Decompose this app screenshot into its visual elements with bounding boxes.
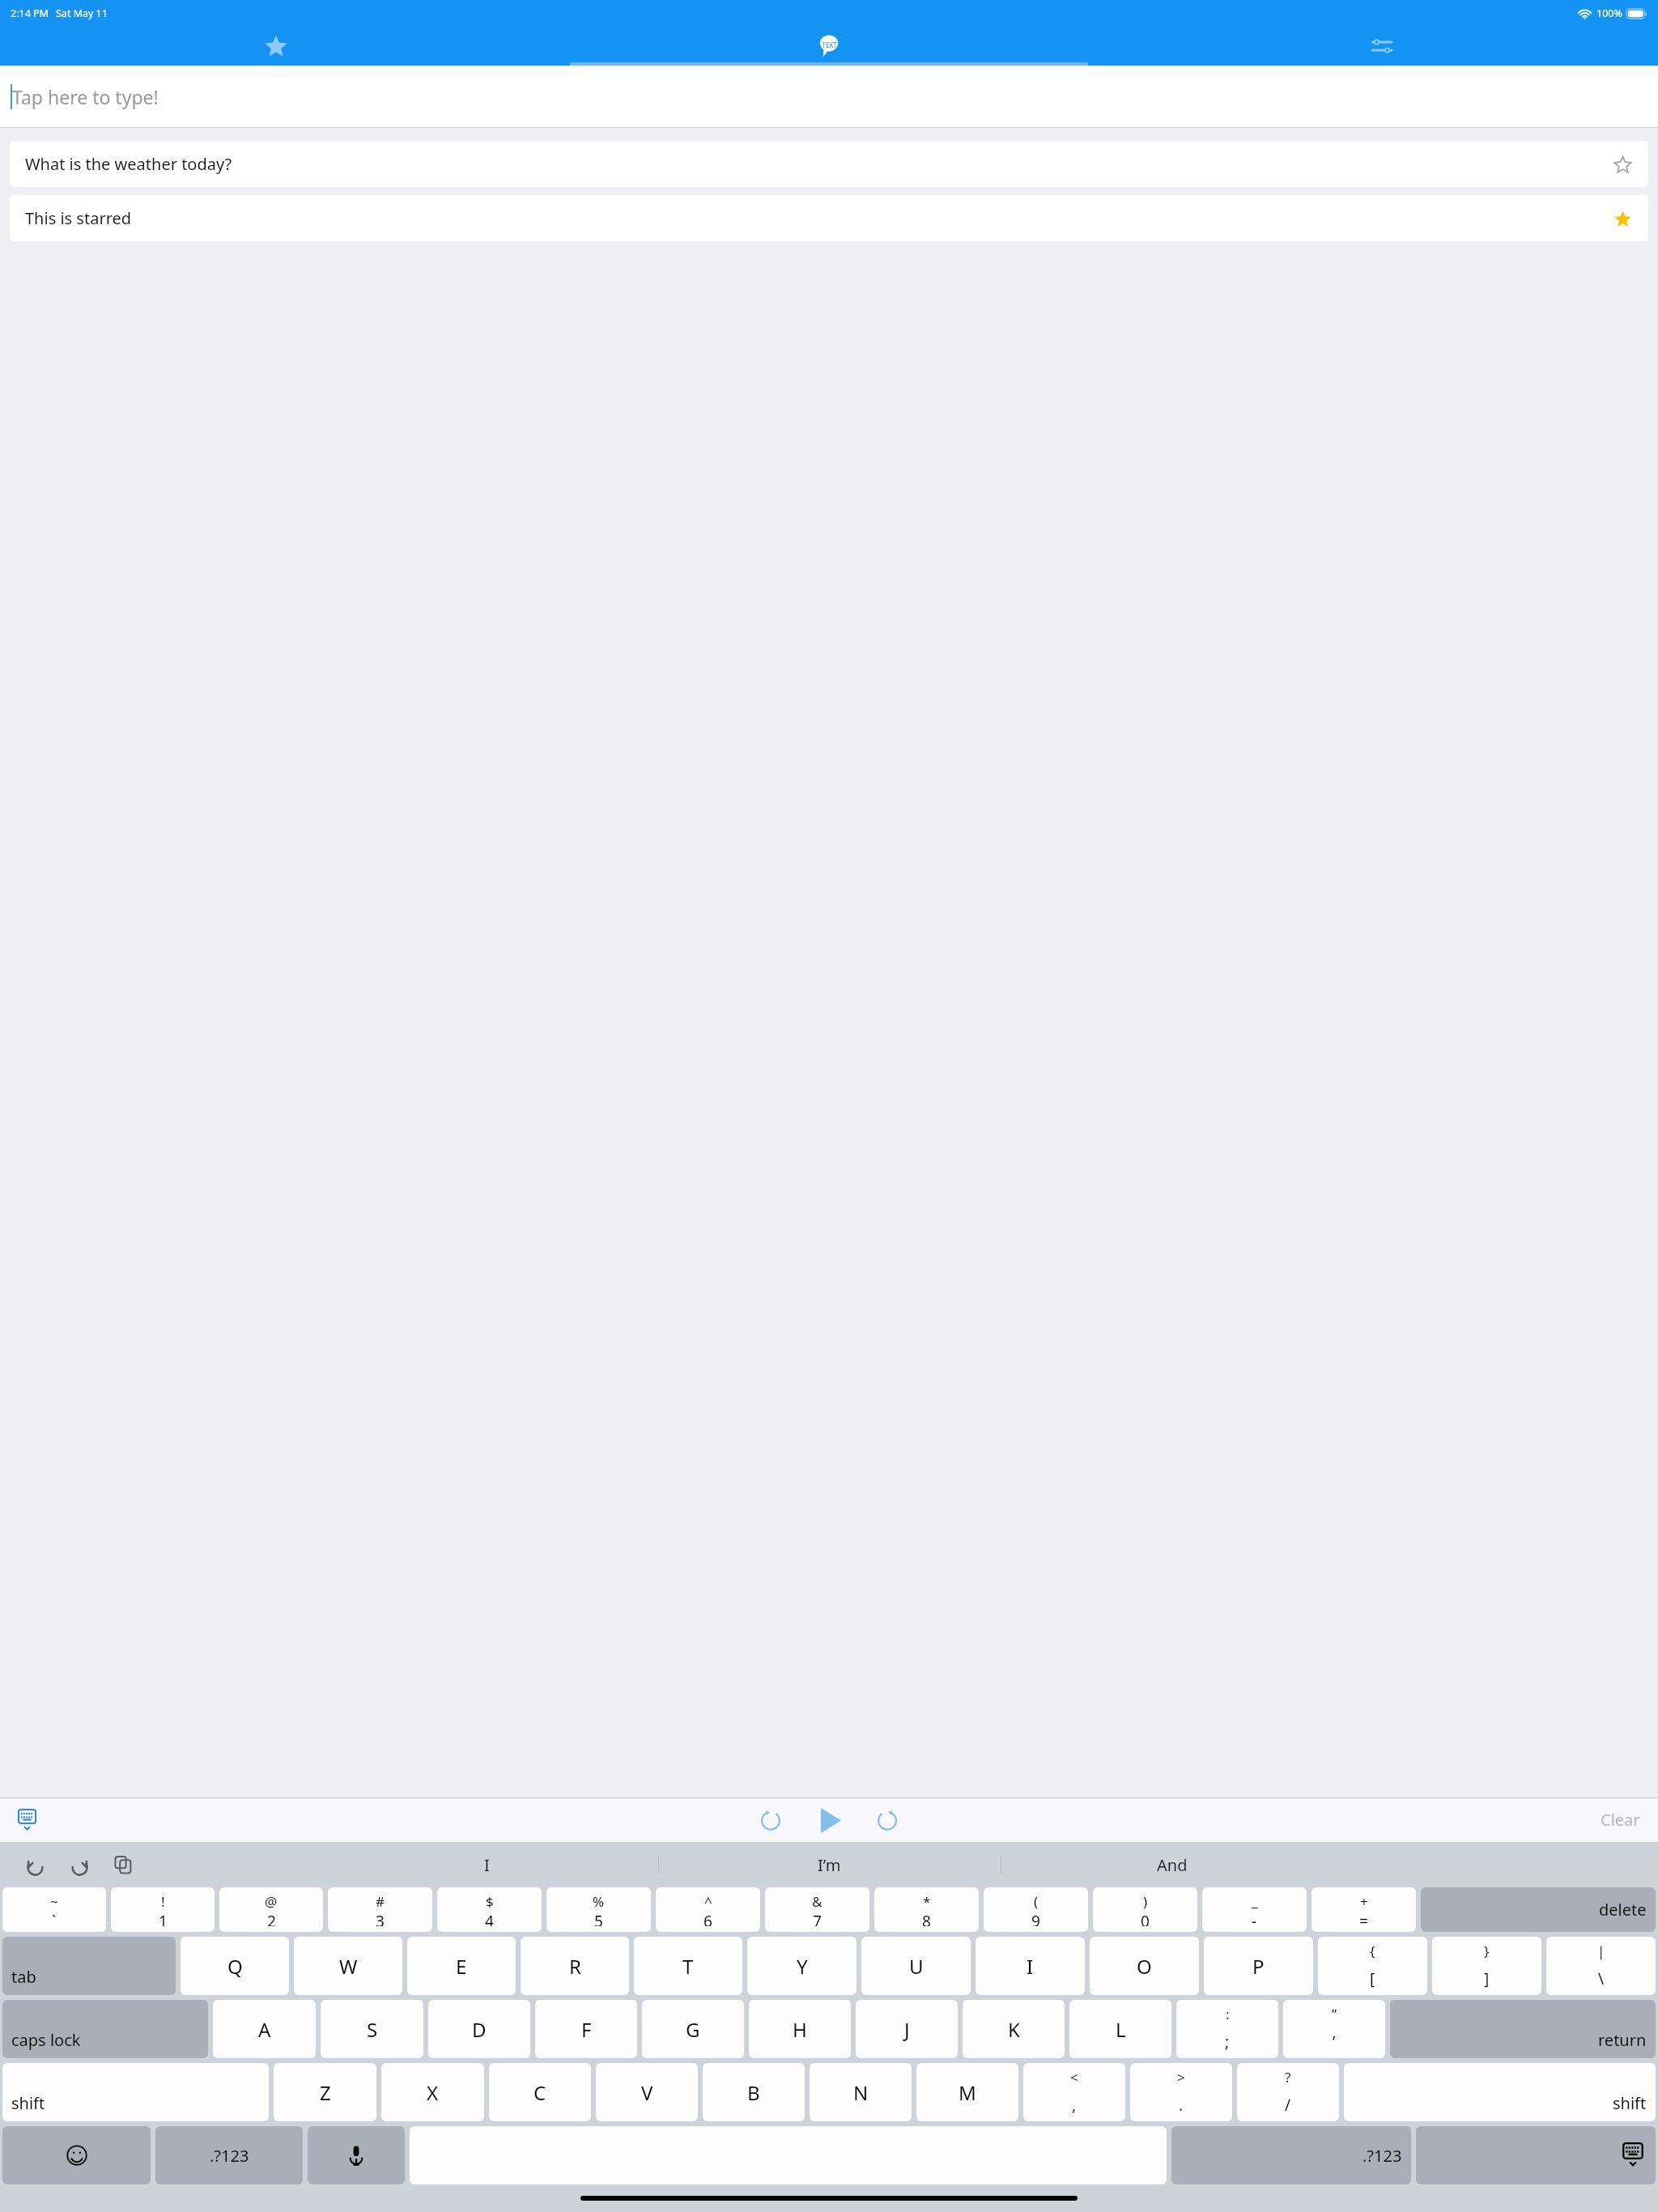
button[interactable]: Star [1605, 147, 1639, 181]
button[interactable]: space [410, 2126, 1167, 2184]
staticText: Clear [1601, 1809, 1640, 1831]
button[interactable]: Clear [1591, 1802, 1650, 1837]
button[interactable]: shift [2, 2063, 269, 2121]
button[interactable]: Redo [61, 1846, 98, 1883]
button[interactable]: Y [747, 1937, 857, 1995]
button[interactable]: return [1390, 2000, 1656, 2058]
button[interactable]: _ [1202, 1887, 1307, 1932]
button[interactable]: > [1130, 2063, 1232, 2121]
button[interactable]: M [916, 2063, 1018, 2121]
button[interactable]: ( [984, 1887, 1088, 1932]
button[interactable]: C [489, 2063, 591, 2121]
button[interactable]: * [874, 1887, 979, 1932]
staticText: 1 [159, 1911, 168, 1926]
button[interactable]: Tap here to type! [0, 66, 1658, 128]
button[interactable]: B [703, 2063, 805, 2121]
button[interactable]: V [596, 2063, 698, 2121]
button[interactable]: ? [1237, 2063, 1339, 2121]
staticText: TEXT [822, 40, 837, 49]
button[interactable]: Paste [105, 1846, 142, 1883]
button[interactable]: J [856, 2000, 958, 2058]
staticText: * [923, 1892, 931, 1911]
button[interactable]: .?123 [155, 2126, 303, 2184]
button[interactable]: Undo [16, 1846, 53, 1883]
button[interactable]: @ [219, 1887, 323, 1932]
button[interactable]: Hide keyboard [10, 1803, 44, 1837]
button[interactable]: P [1204, 1937, 1313, 1995]
button[interactable]: A [213, 2000, 316, 2058]
button[interactable]: S [321, 2000, 423, 2058]
button[interactable]: .?123 [1171, 2126, 1411, 2184]
button[interactable]: F [535, 2000, 637, 2058]
button[interactable]: Rewind [751, 1801, 790, 1840]
button[interactable]: D [428, 2000, 530, 2058]
button[interactable]: E [407, 1937, 516, 1995]
button[interactable]: ~ [2, 1887, 106, 1932]
button[interactable]: ” [1283, 2000, 1385, 2058]
button[interactable]: R [521, 1937, 629, 1995]
button[interactable]: + [1312, 1887, 1416, 1932]
staticText: : [1226, 2005, 1230, 2023]
button[interactable]: L [1069, 2000, 1171, 2058]
button[interactable]: ) [1093, 1887, 1197, 1932]
staticText: N [853, 2079, 869, 2106]
button[interactable]: tab [2, 1937, 176, 1995]
staticText: 6 [704, 1911, 712, 1926]
staticText: 3 [376, 1911, 385, 1926]
button[interactable]: | [1546, 1937, 1656, 1995]
staticText: P [1252, 1953, 1265, 1980]
button[interactable]: Play [808, 1799, 850, 1841]
button[interactable]: Emoji [2, 2126, 151, 2184]
button[interactable]: What is the weather today? [10, 141, 1648, 187]
staticText: This is starred [25, 207, 132, 229]
staticText: shift [1613, 2092, 1647, 2114]
button[interactable]: Settings [1105, 26, 1658, 66]
button[interactable]: & [765, 1887, 869, 1932]
button[interactable]: Favorites [0, 26, 552, 66]
button[interactable]: N [810, 2063, 912, 2121]
button[interactable]: I [315, 1842, 658, 1887]
button[interactable]: K [963, 2000, 1065, 2058]
button[interactable]: U [861, 1937, 971, 1995]
button[interactable]: G [642, 2000, 744, 2058]
staticText: delete [1599, 1899, 1647, 1921]
staticText: .?123 [1363, 2145, 1402, 2167]
staticText: return [1598, 2029, 1647, 2051]
button[interactable]: O [1090, 1937, 1199, 1995]
button[interactable]: shift [1344, 2063, 1656, 2121]
button[interactable]: ! [111, 1887, 215, 1932]
staticText: Tap here to type! [12, 84, 159, 109]
button[interactable]: Z [274, 2063, 376, 2121]
button[interactable]: ^ [656, 1887, 760, 1932]
button[interactable]: Dictate [308, 2126, 405, 2184]
button[interactable]: Q [181, 1937, 289, 1995]
staticText: Sat May 11 [56, 6, 108, 20]
button[interactable]: caps lock [2, 2000, 208, 2058]
button[interactable]: < [1023, 2063, 1125, 2121]
button[interactable]: Text [552, 26, 1105, 66]
staticText: # [376, 1892, 385, 1911]
button[interactable]: I [976, 1937, 1085, 1995]
button[interactable]: I’m [658, 1842, 1001, 1887]
staticText: I [1027, 1953, 1034, 1980]
button[interactable]: # [328, 1887, 432, 1932]
staticText: B [747, 2079, 760, 2106]
button[interactable]: W [294, 1937, 402, 1995]
staticText: ? [1285, 2068, 1291, 2087]
button[interactable]: Forward [868, 1801, 907, 1840]
button[interactable]: } [1432, 1937, 1541, 1995]
button[interactable]: $ [437, 1887, 542, 1932]
button[interactable]: X [381, 2063, 484, 2121]
button[interactable]: This is starred [10, 195, 1648, 241]
button[interactable]: delete [1421, 1887, 1656, 1932]
button[interactable]: T [634, 1937, 742, 1995]
staticText: V [641, 2079, 653, 2106]
button[interactable]: Hide keyboard [1416, 2126, 1656, 2184]
button[interactable]: And [1001, 1842, 1343, 1887]
button[interactable]: % [546, 1887, 651, 1932]
button[interactable]: : [1176, 2000, 1278, 2058]
button[interactable]: Unstar [1605, 202, 1639, 236]
staticText: _ [1252, 1892, 1258, 1911]
button[interactable]: { [1318, 1937, 1427, 1995]
button[interactable]: H [749, 2000, 851, 2058]
